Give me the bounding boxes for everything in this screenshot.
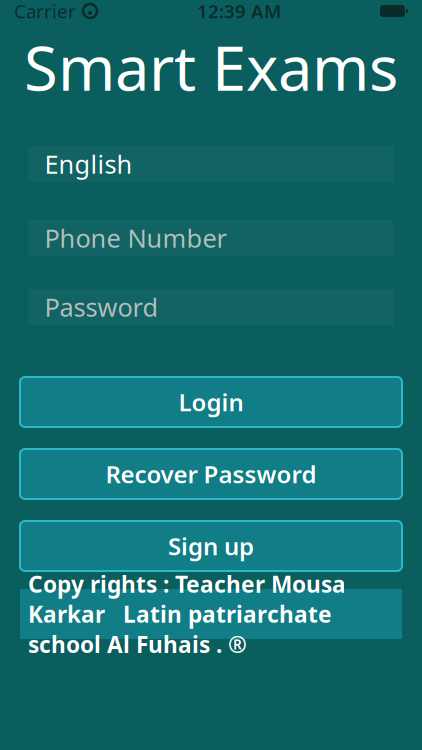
staticText: Password: [44, 290, 158, 324]
button[interactable]: Password: [28, 289, 393, 325]
staticText: English: [44, 147, 132, 181]
staticText: Recover Password: [105, 458, 316, 490]
button[interactable]: Recover Password: [20, 449, 402, 499]
staticText: Sign up: [168, 530, 254, 562]
button[interactable]: Phone Number: [28, 220, 393, 256]
staticText: Carrier: [14, 0, 76, 23]
staticText: Phone Number: [44, 221, 226, 255]
staticText: 12:39 AM: [197, 0, 281, 23]
button[interactable]: English: [28, 146, 393, 182]
button[interactable]: Login: [20, 377, 402, 427]
staticText: Smart Exams: [24, 26, 398, 108]
button[interactable]: Sign up: [20, 521, 402, 571]
staticText: Login: [178, 386, 243, 418]
staticText: Copy rights : Teacher Mousa Karkar Latin…: [28, 569, 346, 659]
